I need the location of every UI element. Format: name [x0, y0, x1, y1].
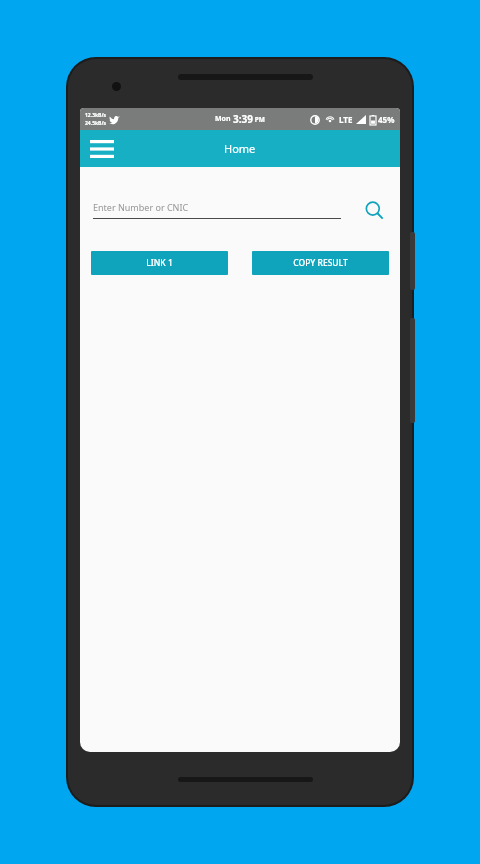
button[interactable]: Search	[359, 195, 389, 225]
staticText: LTE	[339, 114, 353, 125]
staticText: 45%	[378, 114, 395, 125]
staticText: PM	[253, 115, 265, 124]
staticText: COPY RESULT	[293, 257, 348, 269]
staticText: 12.3kB/s	[85, 112, 106, 119]
button[interactable]: Open navigation menu	[86, 133, 118, 165]
staticText: 3:39	[233, 112, 253, 126]
staticText: Enter Number or CNIC	[93, 201, 189, 213]
button[interactable]: Enter Number or CNIC	[93, 201, 341, 219]
staticText: Home	[224, 141, 256, 156]
staticText: 24.5kB/s	[85, 120, 106, 127]
staticText: LINK 1	[146, 257, 173, 269]
button[interactable]: COPY RESULT	[252, 251, 389, 275]
staticText: Mon	[215, 114, 233, 124]
button[interactable]: LINK 1	[91, 251, 228, 275]
